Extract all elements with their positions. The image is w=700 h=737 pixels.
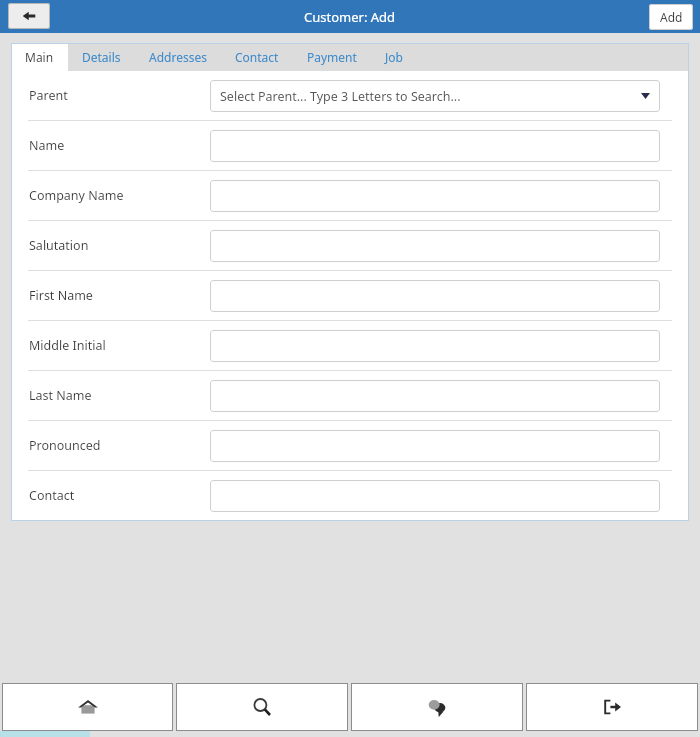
staticText: Pronounced	[29, 437, 101, 454]
staticText: Name	[29, 137, 65, 154]
button[interactable]: Middle Initial	[11, 321, 689, 370]
staticText: Select Parent... Type 3 Letters to Searc…	[220, 88, 461, 105]
staticText: Details	[82, 49, 121, 65]
button[interactable]: Pronounced	[11, 421, 689, 470]
button[interactable]: Main	[11, 43, 68, 71]
staticText: Salutation	[29, 237, 89, 254]
button[interactable]: Payment	[293, 43, 371, 71]
staticText: Company Name	[29, 187, 124, 204]
button[interactable]: Log out	[526, 683, 698, 731]
button[interactable]: Back	[8, 3, 50, 29]
button[interactable]: First Name	[11, 271, 689, 320]
button[interactable]: Company Name	[11, 171, 689, 220]
button[interactable]: Job	[371, 43, 417, 71]
button[interactable]: Contact	[221, 43, 293, 71]
button[interactable]: Last Name	[11, 371, 689, 420]
button[interactable]: Search	[176, 683, 348, 731]
staticText: Parent	[29, 87, 68, 104]
staticText: Contact	[29, 487, 75, 504]
staticText: Last Name	[29, 387, 92, 404]
button[interactable]: Parent	[11, 71, 689, 120]
staticText: Payment	[307, 49, 357, 65]
button[interactable]: Details	[68, 43, 135, 71]
button[interactable]: Messages	[351, 683, 523, 731]
staticText: Customer: Add	[304, 8, 396, 26]
staticText: Main	[25, 49, 54, 65]
button[interactable]: Home	[2, 683, 173, 731]
button[interactable]: Addresses	[135, 43, 221, 71]
staticText: Contact	[235, 49, 279, 65]
staticText: Job	[385, 49, 403, 65]
staticText: Add	[660, 9, 683, 25]
button[interactable]: Salutation	[11, 221, 689, 270]
button[interactable]: Name	[11, 121, 689, 170]
staticText: First Name	[29, 287, 93, 304]
staticText: Addresses	[149, 49, 207, 65]
button[interactable]: Add	[649, 4, 693, 30]
button[interactable]: Contact	[11, 471, 689, 520]
staticText: Middle Initial	[29, 337, 106, 354]
